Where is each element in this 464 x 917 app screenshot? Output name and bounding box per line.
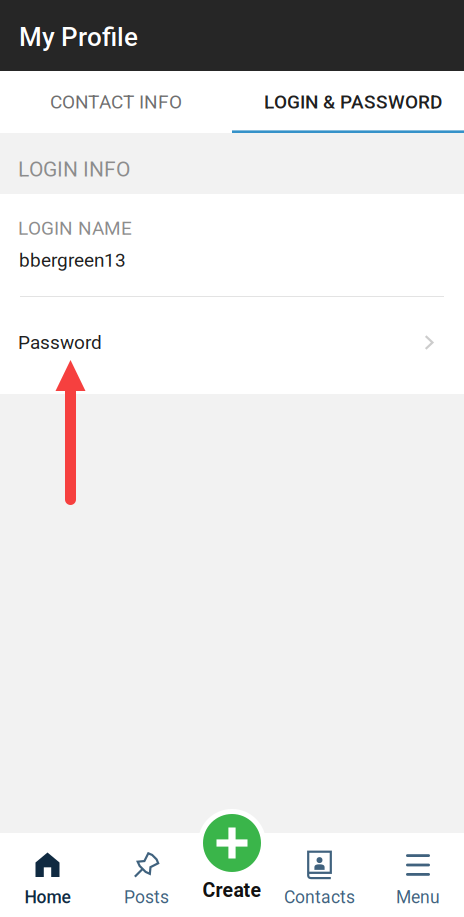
button[interactable]: Contacts [273, 839, 365, 917]
button[interactable]: Posts [100, 839, 192, 917]
staticText: LOGIN INFO [18, 157, 130, 182]
staticText: Menu [396, 887, 440, 907]
button[interactable]: Home [1, 839, 93, 917]
staticText: Create [202, 879, 261, 902]
button[interactable]: Menu [372, 839, 464, 917]
staticText: bbergreen13 [19, 249, 126, 271]
staticText: Posts [124, 887, 169, 907]
staticText: Password [18, 331, 102, 354]
staticText: Home [24, 887, 70, 907]
staticText: LOGIN & PASSWORD [264, 91, 442, 113]
button[interactable]: Create [186, 809, 278, 902]
staticText: My Profile [19, 22, 138, 52]
button[interactable]: CONTACT INFO [0, 71, 232, 133]
button[interactable]: LOGIN & PASSWORD [237, 71, 464, 133]
staticText: LOGIN NAME [18, 217, 132, 239]
staticText: Contacts [284, 887, 355, 907]
button[interactable]: Password [0, 294, 464, 391]
staticText: CONTACT INFO [50, 91, 182, 113]
